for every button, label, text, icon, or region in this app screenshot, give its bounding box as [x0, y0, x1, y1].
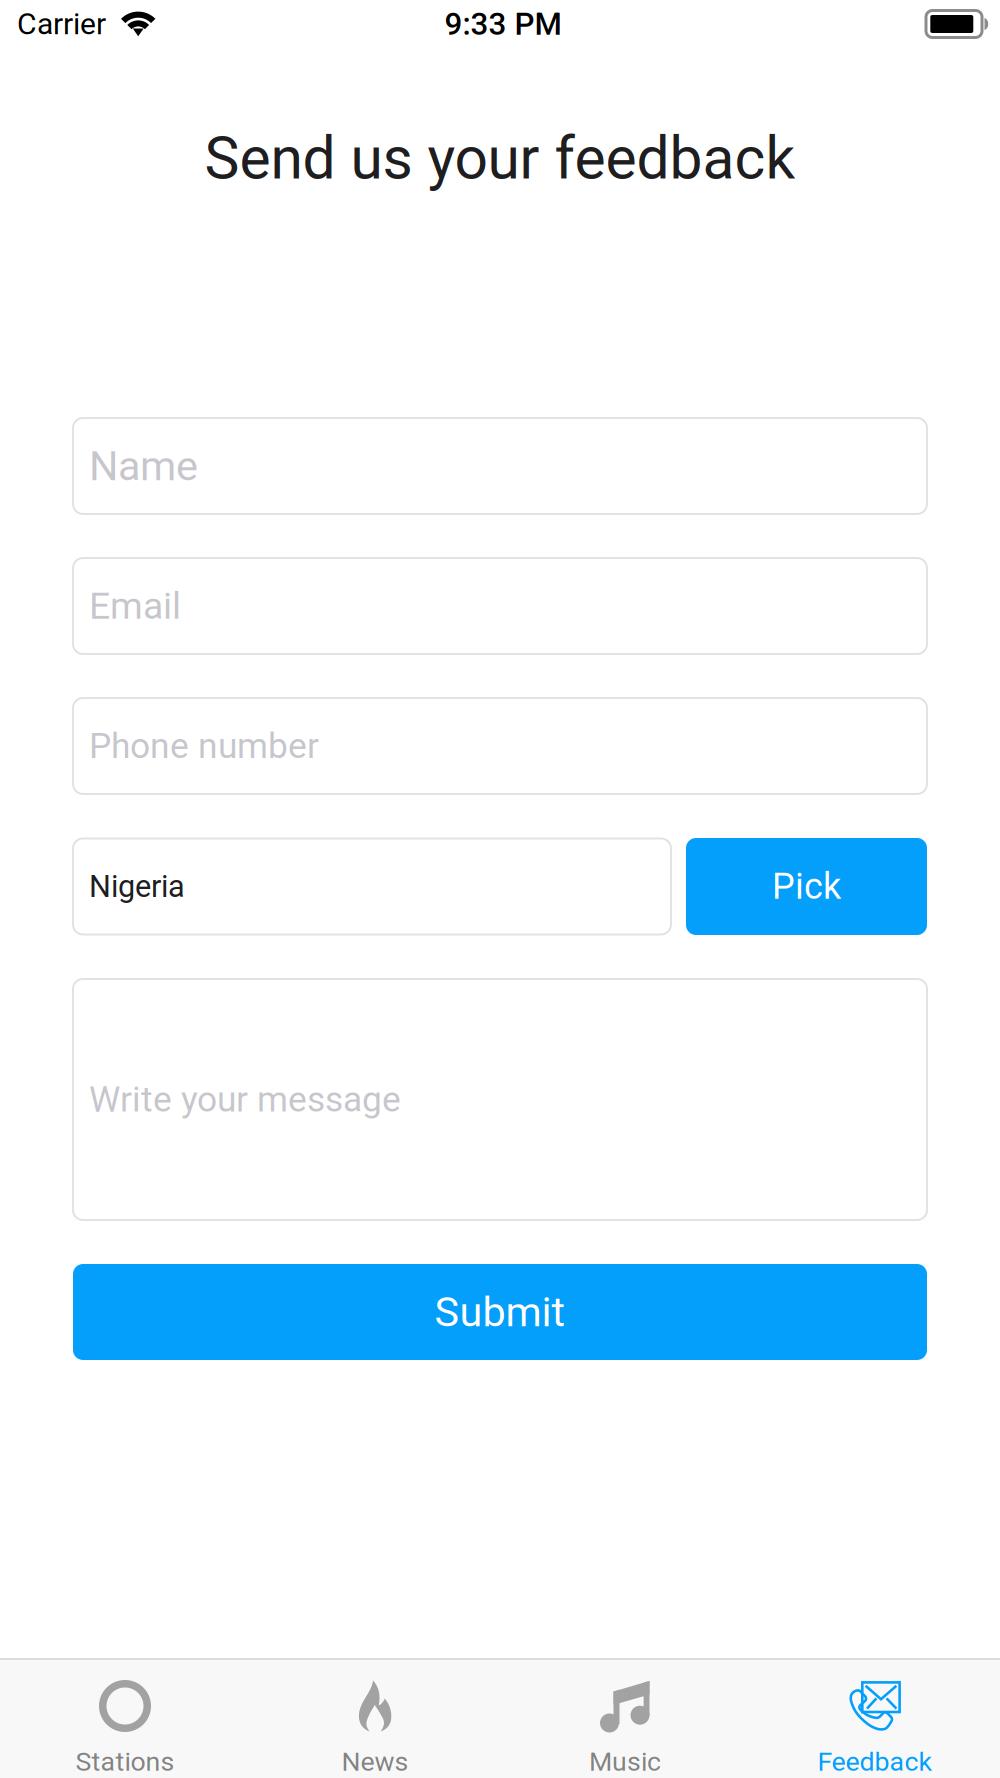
- staticText: Nigeria: [89, 868, 185, 904]
- staticText: News: [341, 1746, 408, 1777]
- button[interactable]: Submit: [73, 1264, 927, 1360]
- button[interactable]: Music: [500, 1658, 750, 1778]
- staticText: Feedback: [817, 1746, 932, 1777]
- staticText: Music: [589, 1746, 661, 1777]
- button[interactable]: Pick: [686, 838, 927, 935]
- button[interactable]: Stations: [0, 1658, 250, 1778]
- staticText: Phone number: [89, 725, 319, 767]
- button[interactable]: Nigeria: [73, 838, 671, 934]
- staticText: Stations: [75, 1746, 174, 1777]
- button[interactable]: Write your message: [73, 979, 927, 1220]
- staticText: Send us your feedback: [204, 124, 795, 193]
- button[interactable]: Phone number: [73, 698, 927, 794]
- staticText: Submit: [434, 1288, 565, 1336]
- button[interactable]: Email: [73, 558, 927, 654]
- staticText: Pick: [772, 865, 841, 908]
- staticText: 9:33 PM: [444, 6, 561, 42]
- button[interactable]: Feedback: [750, 1658, 1000, 1778]
- button[interactable]: Name: [73, 418, 927, 514]
- staticText: Name: [89, 442, 198, 490]
- staticText: Email: [89, 584, 181, 628]
- button[interactable]: News: [250, 1658, 500, 1778]
- staticText: Carrier: [17, 6, 106, 42]
- staticText: Write your message: [89, 1079, 401, 1120]
